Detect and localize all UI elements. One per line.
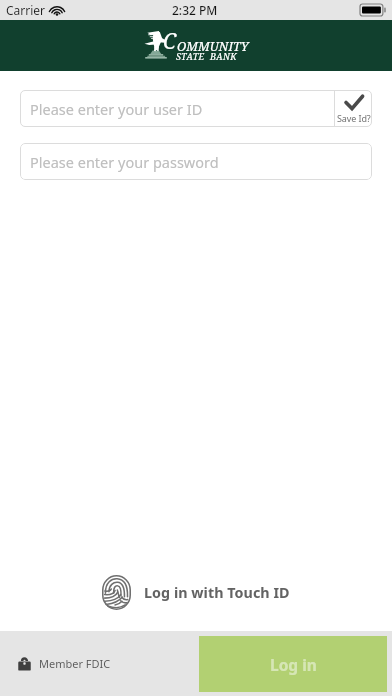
staticText: 2:32 PM: [172, 2, 218, 18]
staticText: Log in with Touch ID: [144, 583, 290, 602]
staticText: Save Id?: [337, 112, 371, 124]
button[interactable]: Please enter your password: [20, 143, 372, 180]
staticText: Carrier: [6, 2, 46, 18]
staticText: OMMUNITY: [177, 38, 249, 55]
button[interactable]: Log in: [199, 636, 387, 692]
staticText: C: [163, 27, 177, 56]
staticText: Please enter your user ID: [30, 99, 203, 119]
staticText: STATE BANK: [176, 50, 237, 62]
staticText: Please enter your password: [30, 152, 219, 172]
button[interactable]: Log in with Touch ID: [102, 575, 290, 610]
button[interactable]: Please enter your user ID: [20, 90, 334, 127]
staticText: Member FDIC: [39, 656, 111, 671]
staticText: Log in: [270, 654, 317, 675]
button[interactable]: Save Id: [335, 90, 372, 127]
